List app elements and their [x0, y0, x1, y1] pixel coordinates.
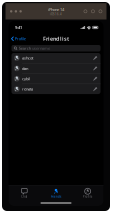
staticText: ashcot: [22, 55, 33, 61]
staticText: Profile: [83, 195, 93, 199]
button[interactable]: Friends: [40, 188, 72, 199]
staticText: Friend list: [43, 35, 69, 42]
staticText: iOS 16.4: [50, 12, 62, 16]
button[interactable]: Screenshot: [91, 10, 94, 13]
staticText: Chat: [21, 195, 27, 199]
staticText: username: [32, 46, 50, 51]
staticText: renata: [22, 86, 33, 92]
button[interactable]: More options: [99, 10, 102, 13]
staticText: iPhone 14: [48, 7, 64, 12]
button[interactable]: ashcot: [11, 53, 100, 63]
button[interactable]: Chat: [8, 188, 40, 199]
staticText: 9:41: [15, 25, 22, 30]
staticText: Profile: [15, 36, 26, 41]
button[interactable]: renata: [11, 84, 100, 94]
staticText: dan: [22, 66, 28, 71]
button[interactable]: cybil: [11, 74, 100, 84]
staticText: Friends: [51, 195, 61, 199]
button[interactable]: Rotate device: [84, 10, 87, 13]
button[interactable]: Profile: [72, 188, 103, 199]
staticText: Search: [19, 46, 31, 51]
button[interactable]: Profile: [8, 34, 28, 43]
button[interactable]: dan: [11, 63, 100, 73]
button[interactable]: Search: [11, 45, 100, 51]
staticText: cybil: [22, 76, 30, 81]
